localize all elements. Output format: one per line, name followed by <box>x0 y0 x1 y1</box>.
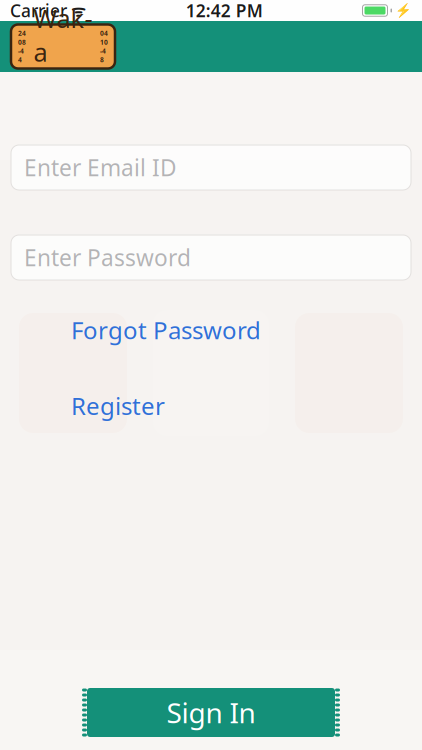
button[interactable]: Sign In <box>82 688 340 737</box>
staticText: 2408-44 <box>18 29 26 64</box>
staticText: Sign In <box>166 694 255 731</box>
staticText: Enter Email ID <box>24 152 177 182</box>
staticText: Carrier <box>10 0 67 22</box>
button[interactable]: Register <box>71 384 165 428</box>
button[interactable]: Waka Ticket home <box>0 24 115 68</box>
staticText: 0410-48 <box>100 29 108 64</box>
staticText: Register <box>71 390 165 422</box>
staticText: 12:42 PM <box>186 0 263 22</box>
staticText: ᯤ <box>67 0 86 21</box>
staticText: Forgot Password <box>71 314 261 346</box>
staticText: Waka <box>33 1 92 69</box>
staticText: ⚡ <box>395 3 412 18</box>
button[interactable]: Forgot Password <box>71 308 261 352</box>
staticText: Ticket <box>37 67 89 91</box>
staticText: Enter Password <box>24 242 191 272</box>
